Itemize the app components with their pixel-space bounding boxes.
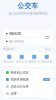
- staticText: 常用出行: [3, 47, 15, 51]
- button[interactable]: 交换起点与终点: [44, 33, 50, 41]
- staticText: 附近站点: [3, 60, 15, 63]
- staticText: 实时公交: [16, 60, 28, 63]
- staticText: 更多 ›: [45, 47, 53, 51]
- staticText: 设置: [11, 92, 17, 95]
- button[interactable]: 我的常用线路: [3, 76, 53, 83]
- button[interactable]: 设置: [3, 90, 53, 97]
- staticText: 输入起点和终点查询换乘路线: [8, 11, 47, 15]
- staticText: 我的常用线路: [11, 78, 29, 81]
- button[interactable]: 我的收藏: [40, 52, 53, 66]
- staticText: 线路查询: [28, 60, 40, 63]
- staticText: 输入终点站: [9, 39, 24, 44]
- button[interactable]: 实时公交: [15, 52, 28, 66]
- staticText: 我的位置: [9, 31, 21, 36]
- button[interactable]: 附近站点: [3, 52, 15, 66]
- button[interactable]: 线路查询: [28, 52, 40, 66]
- staticText: 附近的公交站: [11, 71, 29, 74]
- button[interactable]: 附近的公交站: [3, 69, 53, 76]
- staticText: 我的收藏: [41, 60, 53, 63]
- staticText: 历史出行记录: [11, 85, 29, 88]
- button[interactable]: 历史出行记录: [3, 83, 53, 90]
- staticText: NEW: [44, 78, 49, 81]
- staticText: 公交车: [17, 1, 38, 10]
